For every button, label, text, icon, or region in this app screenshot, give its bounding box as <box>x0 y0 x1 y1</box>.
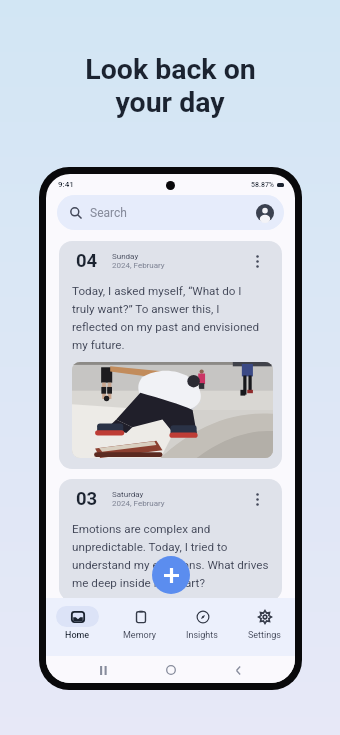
staticText: Saturday <box>112 490 144 499</box>
staticText: Today, I asked myself, “What do I truly … <box>72 284 260 352</box>
button[interactable]: Recents <box>93 660 113 680</box>
button[interactable]: Home <box>161 660 181 680</box>
staticText: your day <box>115 86 225 119</box>
staticText: 2024, February <box>112 261 165 270</box>
button[interactable]: Search <box>57 195 284 230</box>
staticText: Search <box>90 206 127 220</box>
button[interactable]: More options <box>248 252 266 270</box>
staticText: Emotions are complex and unpredictable. … <box>72 522 269 590</box>
staticText: 04 <box>76 250 98 272</box>
staticText: Insights <box>186 630 218 641</box>
staticText: 03 <box>76 488 98 510</box>
staticText: Settings <box>248 630 281 641</box>
staticText: Look back on <box>85 53 256 86</box>
staticText: Memory <box>123 630 157 641</box>
button[interactable]: More options <box>248 490 266 508</box>
button[interactable]: Home <box>46 606 109 641</box>
button[interactable]: Memory <box>109 606 171 641</box>
staticText: Home <box>65 630 90 641</box>
staticText: 2024, February <box>112 499 165 508</box>
button[interactable]: Add entry <box>152 556 190 594</box>
staticText: 58.87% <box>251 181 275 189</box>
button[interactable]: Back <box>228 660 248 680</box>
button[interactable]: 03 <box>59 479 282 601</box>
button[interactable]: 04 <box>59 241 282 469</box>
staticText: 9:41 <box>58 180 74 189</box>
staticText: Sunday <box>112 252 139 261</box>
button[interactable]: Settings <box>233 606 295 641</box>
button[interactable]: Insights <box>171 606 233 641</box>
